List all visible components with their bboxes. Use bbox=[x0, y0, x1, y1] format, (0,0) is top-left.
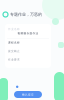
button[interactable]: 作业要求 bbox=[5, 55, 51, 64]
button[interactable]: 同意协议 bbox=[15, 85, 19, 89]
staticText: 提交截止 bbox=[8, 49, 20, 53]
staticText: 作业名称 bbox=[8, 27, 20, 31]
staticText: 确认提交 bbox=[22, 93, 34, 96]
staticText: 课程名称 bbox=[8, 41, 20, 44]
button[interactable]: 课程名称 bbox=[5, 38, 51, 47]
button[interactable]: 确认提交 bbox=[0, 91, 42, 98]
button[interactable]: 提交截止 bbox=[5, 47, 51, 55]
staticText: 专题作业，万恶的 bbox=[10, 12, 42, 17]
staticText: 毒蝾螈专题作业 bbox=[17, 32, 38, 35]
staticText: 作业要求 bbox=[8, 58, 20, 61]
